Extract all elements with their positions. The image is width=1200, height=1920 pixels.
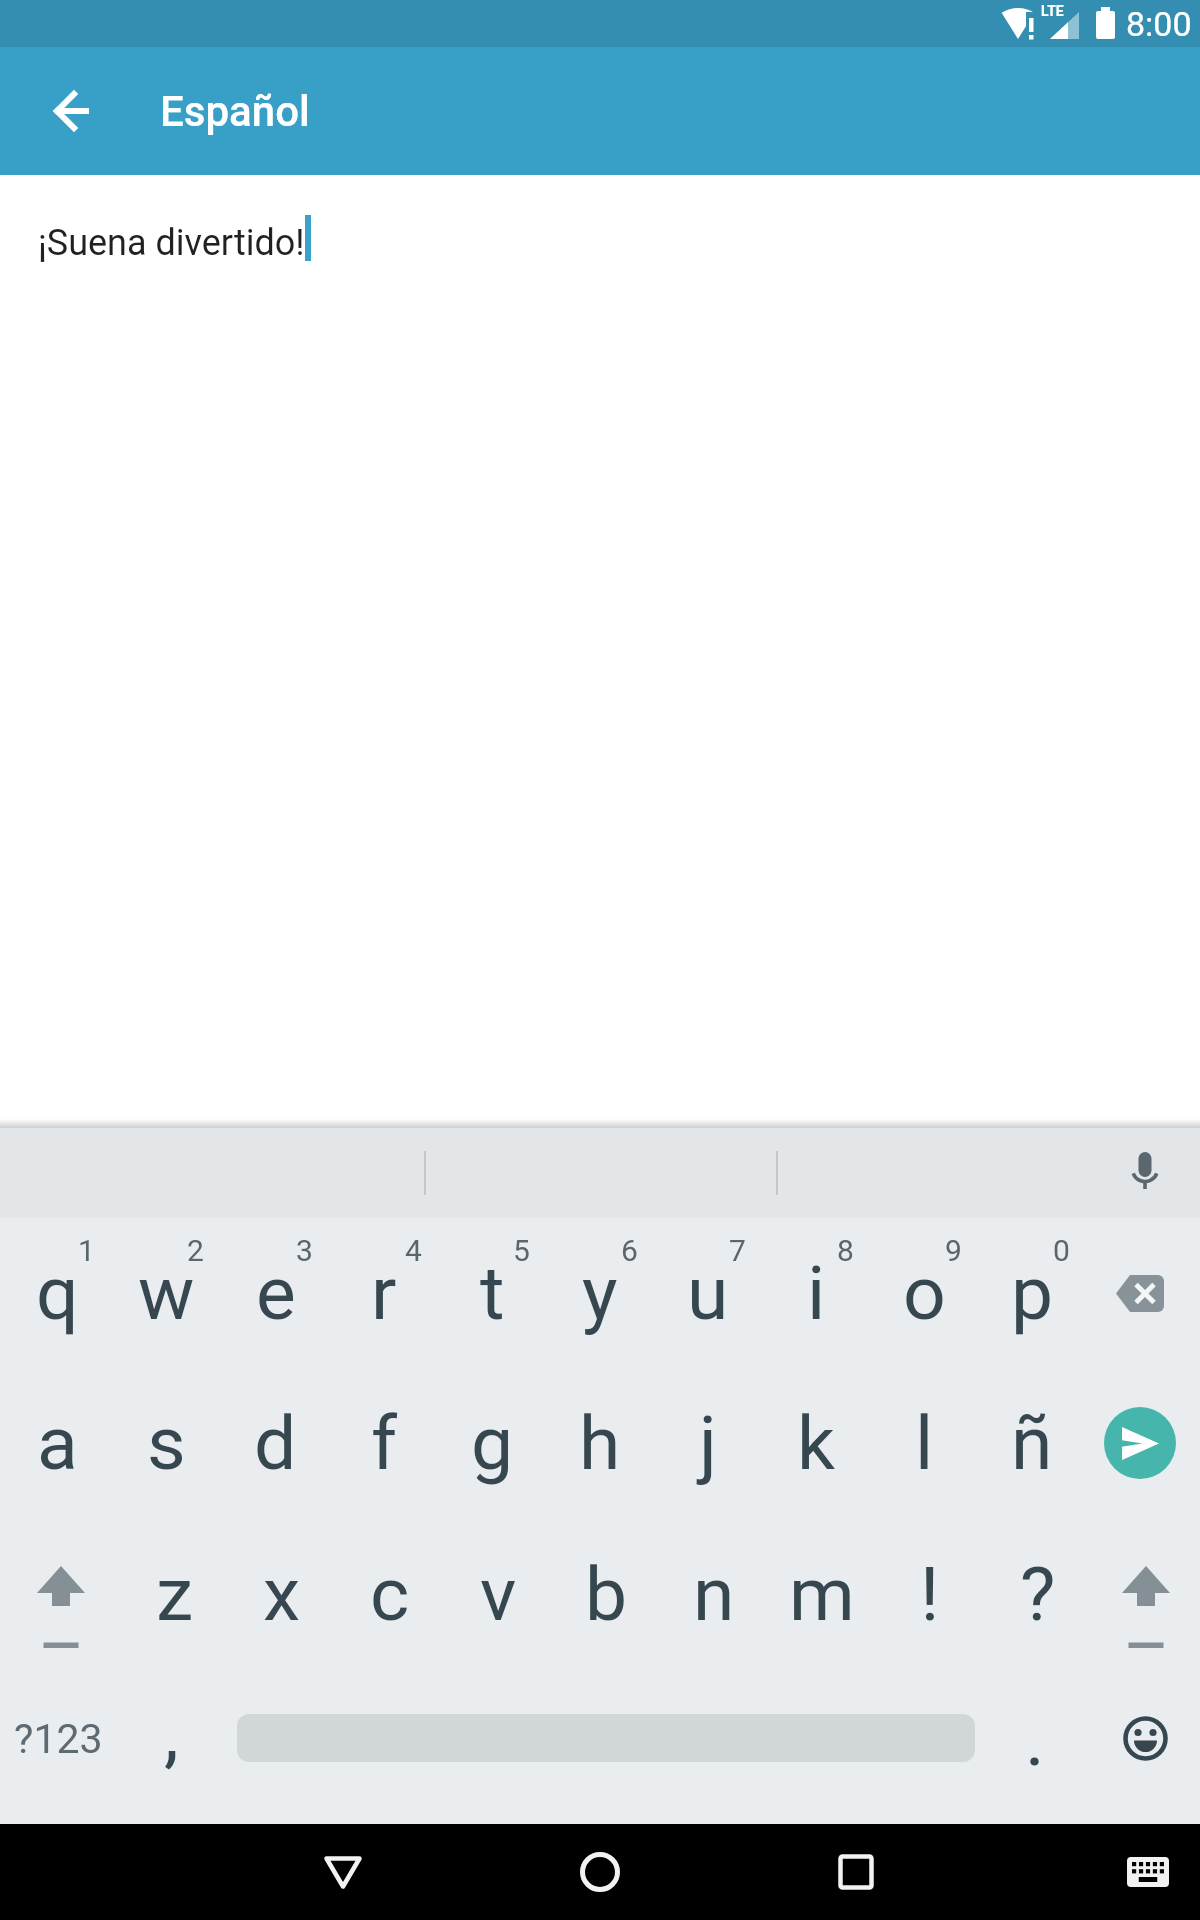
button[interactable]: 3 <box>221 1218 330 1368</box>
button[interactable]: a <box>3 1368 112 1518</box>
button[interactable]: n <box>660 1518 768 1670</box>
button[interactable]: l <box>870 1368 978 1518</box>
button[interactable]: 9 <box>870 1218 978 1368</box>
staticText: ñ <box>1011 1399 1053 1487</box>
staticText: ?123 <box>14 1715 103 1763</box>
button[interactable]: j <box>654 1368 762 1518</box>
staticText: t <box>480 1249 505 1337</box>
button[interactable]: f <box>330 1368 438 1518</box>
staticText: f <box>371 1399 398 1487</box>
button[interactable]: 4 <box>330 1218 438 1368</box>
button[interactable]: 5 <box>438 1218 546 1368</box>
staticText: h <box>579 1399 621 1487</box>
staticText: c <box>370 1550 410 1638</box>
staticText: 9 <box>945 1233 962 1268</box>
button[interactable]: m <box>768 1518 876 1670</box>
button[interactable] <box>564 1836 636 1908</box>
staticText: . <box>1025 1695 1045 1783</box>
staticText: i <box>807 1249 826 1337</box>
staticText: v <box>480 1550 517 1638</box>
button[interactable]: g <box>438 1368 546 1518</box>
staticText: 8 <box>837 1233 854 1268</box>
button[interactable]: ! <box>876 1518 984 1670</box>
button[interactable]: x <box>228 1518 336 1670</box>
staticText: e <box>256 1249 296 1337</box>
staticText: b <box>585 1550 628 1638</box>
staticText: o <box>903 1249 946 1337</box>
button[interactable]: ?123 <box>0 1670 117 1824</box>
staticText: ? <box>1020 1550 1056 1638</box>
button[interactable] <box>820 1836 892 1908</box>
button[interactable] <box>1092 1518 1200 1670</box>
staticText: q <box>36 1249 79 1337</box>
button[interactable]: c <box>336 1518 444 1670</box>
staticText: Español <box>160 87 310 136</box>
button[interactable]: s <box>112 1368 221 1518</box>
button[interactable] <box>1090 1670 1200 1824</box>
button[interactable]: h <box>546 1368 654 1518</box>
staticText: u <box>687 1249 729 1337</box>
staticText: m <box>789 1550 855 1638</box>
staticText: x <box>263 1550 301 1638</box>
staticText: 1 <box>78 1233 95 1268</box>
staticText: 2 <box>187 1233 204 1268</box>
button[interactable]: v <box>444 1518 552 1670</box>
button[interactable]: 6 <box>546 1218 654 1368</box>
button[interactable]: . <box>980 1670 1090 1824</box>
button[interactable]: ñ <box>978 1368 1086 1518</box>
staticText: n <box>693 1550 735 1638</box>
staticText: ! <box>920 1550 940 1638</box>
staticText: , <box>164 1689 179 1777</box>
button[interactable]: , <box>117 1670 225 1824</box>
staticText: 5 <box>513 1233 530 1268</box>
button[interactable] <box>1086 1368 1194 1518</box>
staticText: j <box>699 1399 717 1487</box>
staticText: l <box>915 1399 934 1487</box>
staticText: p <box>1011 1249 1054 1337</box>
button[interactable]: b <box>552 1518 660 1670</box>
staticText: g <box>471 1399 514 1487</box>
staticText: ¡Suena divertido! <box>38 222 305 264</box>
staticText: 6 <box>621 1233 638 1268</box>
button[interactable]: k <box>762 1368 870 1518</box>
button[interactable] <box>225 1670 980 1824</box>
button[interactable]: 1 <box>3 1218 112 1368</box>
button[interactable] <box>0 1518 121 1670</box>
button[interactable] <box>41 79 105 143</box>
staticText: a <box>37 1399 78 1487</box>
button[interactable]: 2 <box>112 1218 221 1368</box>
button[interactable]: ? <box>984 1518 1092 1670</box>
button[interactable]: z <box>121 1518 228 1670</box>
staticText: 7 <box>729 1233 746 1268</box>
staticText: 3 <box>296 1233 313 1268</box>
button[interactable]: 0 <box>978 1218 1086 1368</box>
staticText: d <box>254 1399 297 1487</box>
button[interactable]: 7 <box>654 1218 762 1368</box>
button[interactable]: d <box>221 1368 330 1518</box>
staticText: k <box>797 1399 836 1487</box>
button[interactable] <box>1086 1218 1194 1368</box>
button[interactable]: 8 <box>762 1218 870 1368</box>
staticText: 8:00 <box>1126 4 1192 44</box>
button[interactable] <box>1112 1836 1184 1908</box>
staticText: y <box>582 1249 618 1337</box>
staticText: LTE <box>1041 3 1064 19</box>
staticText: w <box>138 1249 195 1337</box>
staticText: s <box>147 1399 186 1487</box>
staticText: r <box>371 1249 397 1337</box>
staticText: 0 <box>1053 1233 1070 1268</box>
button[interactable] <box>1109 1137 1181 1209</box>
staticText: z <box>156 1550 194 1638</box>
button[interactable] <box>307 1836 379 1908</box>
staticText: 4 <box>405 1233 422 1268</box>
